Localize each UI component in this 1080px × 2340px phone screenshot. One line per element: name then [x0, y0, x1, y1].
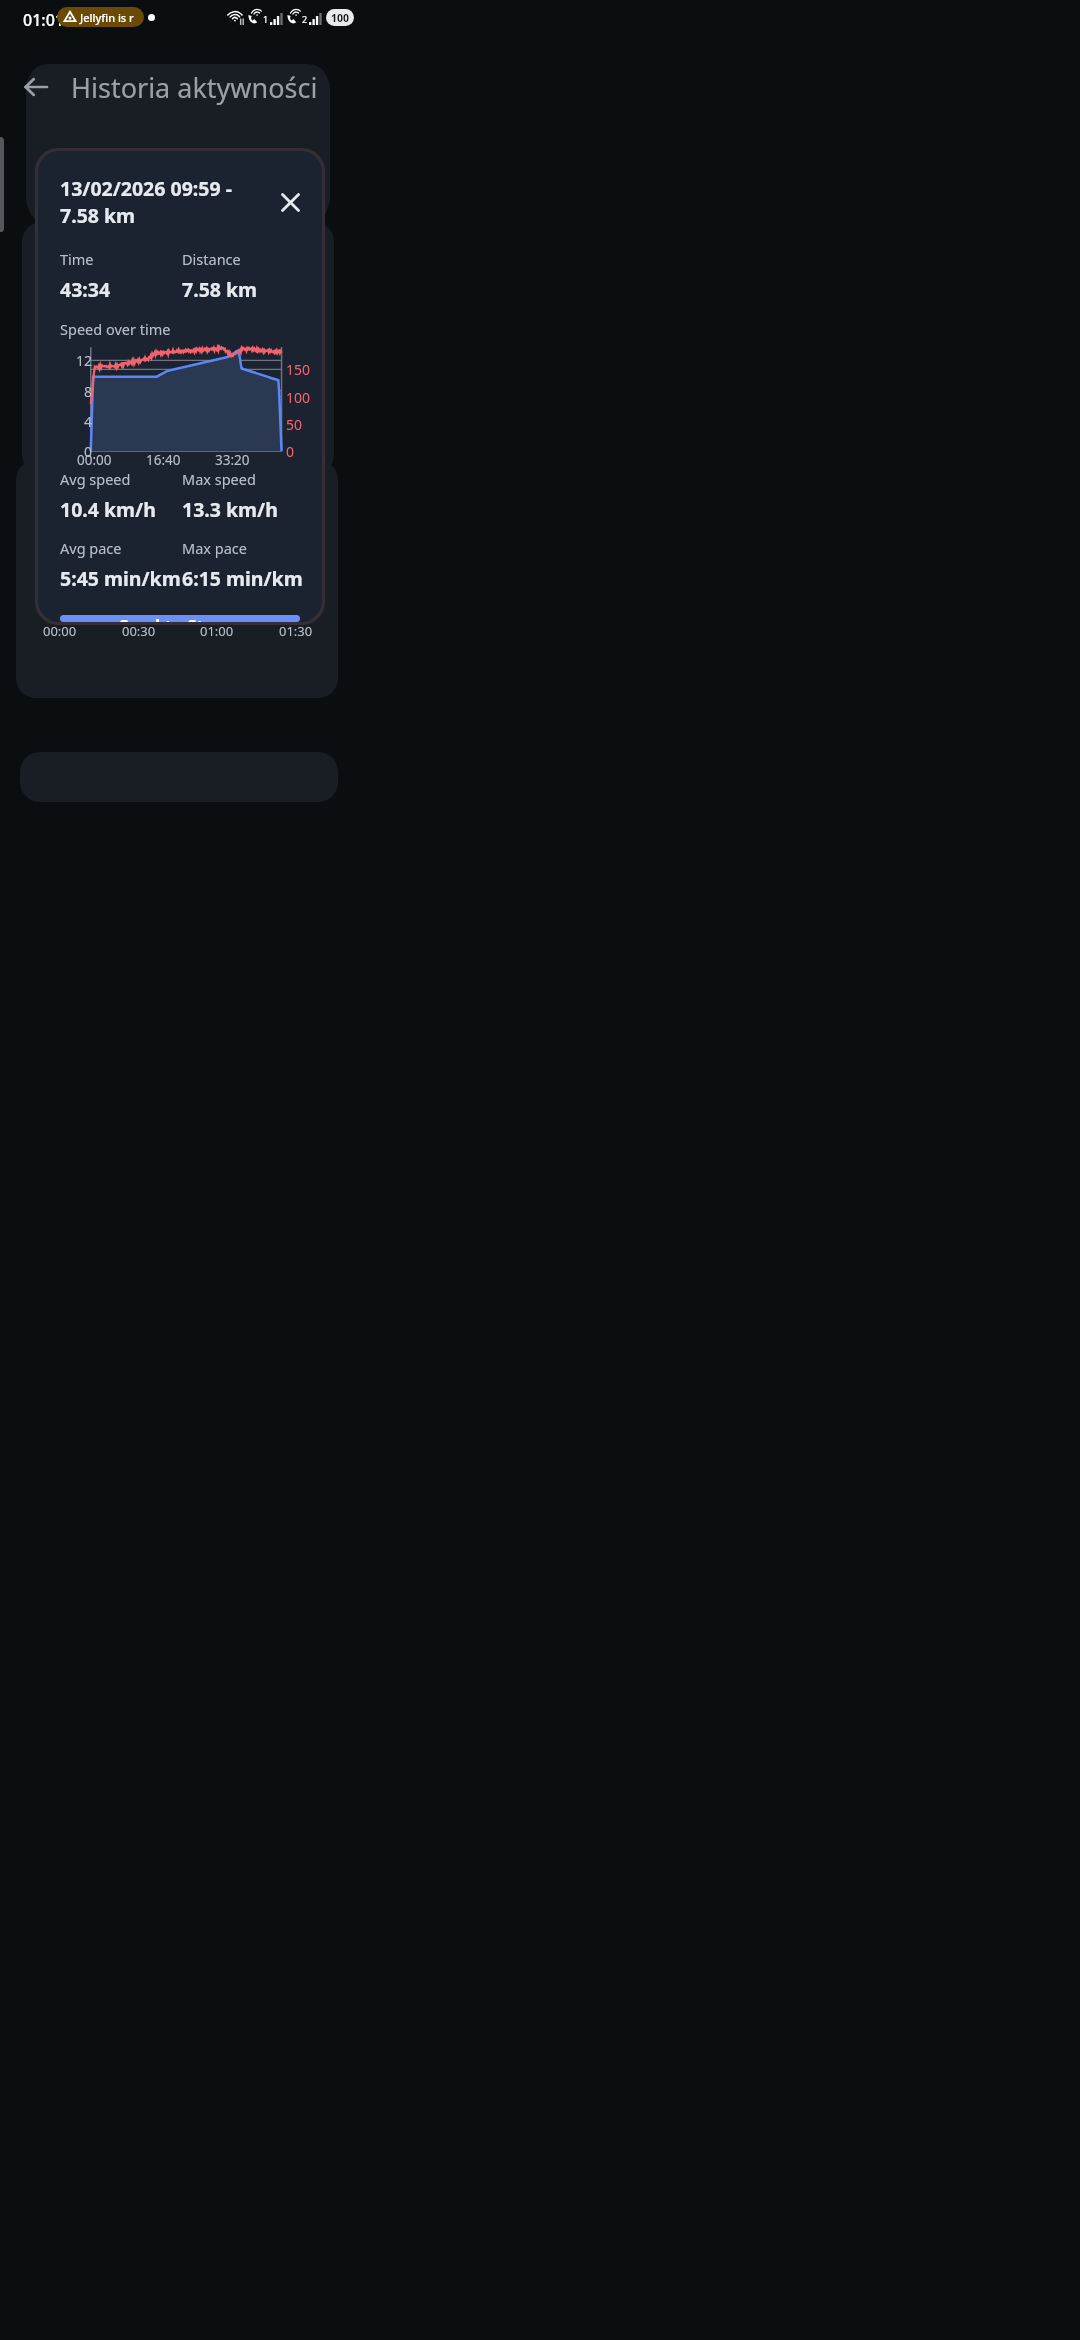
staticText: Avg pace — [60, 538, 122, 558]
staticText: 5:45 min/km — [60, 565, 181, 592]
staticText: 33:20 — [215, 451, 250, 469]
staticText: 16:40 — [146, 451, 181, 469]
staticText: Speed over time — [60, 319, 171, 339]
staticText: 100 — [286, 388, 311, 407]
staticText: 0 — [47, 606, 54, 622]
staticText: 10.4 km/h — [60, 496, 156, 523]
button[interactable]: Back — [13, 64, 59, 110]
staticText: Historia aktywności — [71, 69, 318, 106]
staticText: 13/02/2026 09:59 - 7.58 km — [60, 175, 272, 229]
staticText: Jellyfin is r — [80, 10, 134, 25]
staticText: 00:00 — [77, 451, 112, 469]
staticText: 8 — [64, 382, 92, 401]
staticText: 1 — [263, 13, 269, 25]
staticText: Send to Strava — [119, 615, 242, 622]
staticText: Avg speed — [60, 469, 131, 489]
staticText: 00:30 — [122, 622, 156, 640]
staticText: 01:30 — [279, 622, 313, 640]
staticText: 100 — [331, 11, 350, 25]
button[interactable]: Close — [272, 184, 308, 220]
staticText: 4 — [64, 412, 92, 431]
staticText: 6:15 min/km — [182, 565, 303, 592]
staticText: 50 — [286, 415, 303, 434]
staticText: 01:01 — [23, 9, 64, 31]
staticText: 2 — [302, 13, 308, 25]
button[interactable]: Send to Strava — [60, 615, 300, 622]
staticText: 0 — [286, 442, 295, 461]
staticText: 0 — [299, 606, 306, 622]
staticText: Time — [60, 249, 94, 269]
staticText: 12 — [64, 351, 92, 370]
staticText: 150 — [286, 360, 311, 379]
staticText: Max speed — [182, 469, 256, 489]
staticText: Distance — [182, 249, 241, 269]
staticText: 0 — [64, 442, 92, 461]
staticText: 13.3 km/h — [182, 496, 278, 523]
staticText: 01:00 — [200, 622, 234, 640]
staticText: Max pace — [182, 538, 247, 558]
staticText: 7.58 km — [182, 276, 258, 303]
staticText: 43:34 — [60, 276, 111, 303]
staticText: 00:00 — [43, 622, 77, 640]
